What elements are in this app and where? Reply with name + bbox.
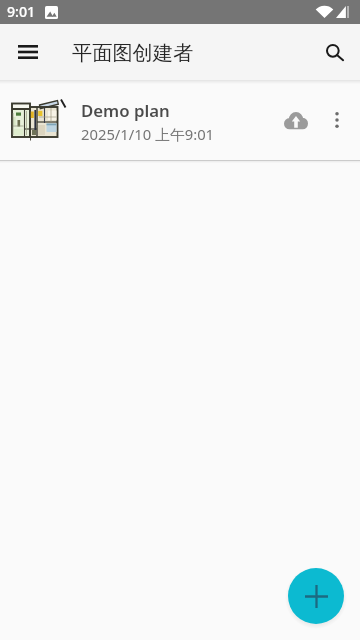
- staticText: 2025/1/10 上午9:01: [81, 124, 215, 144]
- button[interactable]: Open navigation drawer: [4, 28, 52, 76]
- staticText: 9:01: [7, 2, 36, 21]
- button[interactable]: Create new plan: [288, 568, 344, 624]
- button[interactable]: Search: [311, 28, 359, 76]
- button[interactable]: Demo plan: [0, 80, 360, 160]
- button[interactable]: More options: [315, 98, 359, 142]
- button[interactable]: Upload to cloud: [272, 96, 320, 144]
- staticText: 平面图创建者: [72, 41, 194, 66]
- staticText: Demo plan: [81, 99, 170, 122]
